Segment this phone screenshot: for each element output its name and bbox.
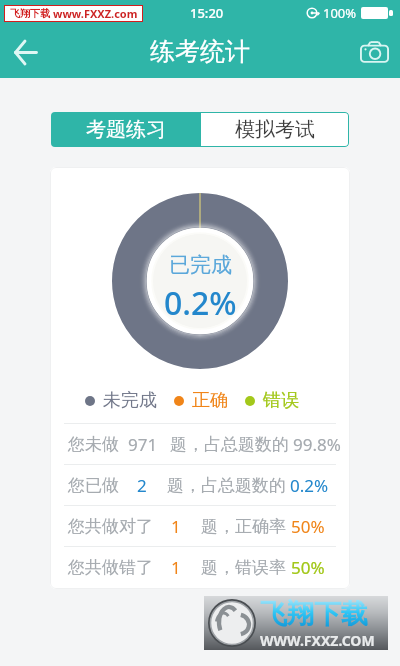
staticText: 0.2% bbox=[164, 281, 237, 325]
staticText: 错误 bbox=[263, 389, 299, 412]
staticText: 模拟考试 bbox=[235, 117, 315, 142]
staticText: 50% bbox=[291, 515, 325, 538]
staticText: 题，错误率 bbox=[201, 557, 286, 578]
staticText: 您共做对了 bbox=[68, 516, 153, 537]
staticText: 飞翔下载 bbox=[10, 7, 50, 20]
staticText: 题，占总题数的 bbox=[167, 475, 286, 496]
staticText: 未完成 bbox=[103, 389, 157, 412]
button[interactable]: Back bbox=[1, 28, 49, 76]
staticText: 2 bbox=[137, 474, 147, 497]
staticText: 飞翔下载 bbox=[260, 597, 368, 631]
staticText: www.FXXZ.com bbox=[53, 6, 138, 21]
staticText: 1 bbox=[171, 556, 181, 579]
staticText: 15:20 bbox=[190, 4, 224, 22]
staticText: 0.2% bbox=[290, 474, 329, 497]
staticText: 您已做 bbox=[68, 475, 119, 496]
staticText: 已完成 bbox=[169, 252, 232, 278]
staticText: 100% bbox=[323, 4, 357, 22]
staticText: 题，占总题数的 bbox=[170, 434, 289, 455]
staticText: 考题练习 bbox=[86, 117, 166, 142]
staticText: 题，正确率 bbox=[201, 516, 286, 537]
staticText: 50% bbox=[291, 556, 325, 579]
button[interactable]: 模拟考试 bbox=[200, 112, 349, 147]
button[interactable]: Camera bbox=[352, 30, 396, 74]
staticText: 971 bbox=[128, 433, 158, 456]
staticText: 您未做 bbox=[68, 434, 119, 455]
staticText: 1 bbox=[171, 515, 181, 538]
button[interactable]: 考题练习 bbox=[51, 112, 200, 147]
staticText: 练考统计 bbox=[150, 36, 250, 67]
staticText: 99.8% bbox=[293, 433, 341, 456]
staticText: WWW.FXXZ.COM bbox=[260, 631, 375, 650]
staticText: 正确 bbox=[192, 389, 228, 412]
staticText: 您共做错了 bbox=[68, 557, 153, 578]
